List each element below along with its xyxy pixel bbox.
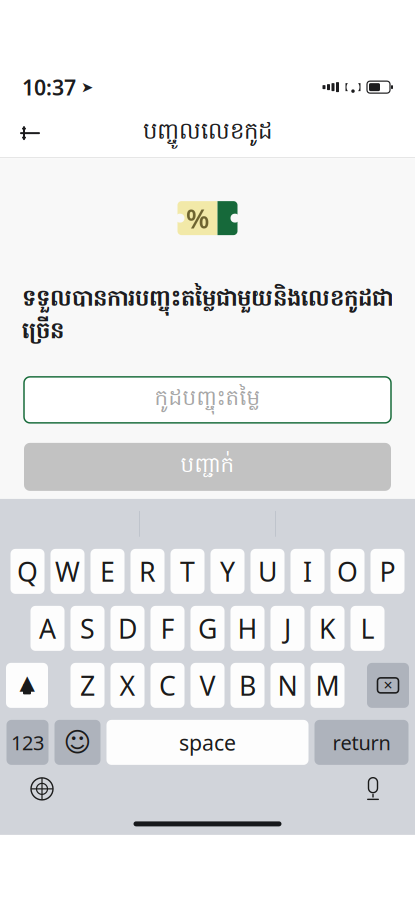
button[interactable]: H [230,606,264,651]
staticText: space [179,728,236,756]
staticText: O [337,554,358,589]
staticText: P [379,554,395,589]
staticText: J [284,611,291,646]
button[interactable]: L [350,606,384,651]
button[interactable]: Dictation [351,767,395,811]
button[interactable]: បញ្ជាក់ [0,443,415,491]
staticText: ▲ [19,671,34,694]
staticText: G [198,611,217,646]
button[interactable]: E [90,549,124,594]
button[interactable]: Z [70,663,104,708]
button[interactable]: Q [10,549,44,594]
staticText: T [180,554,195,589]
button[interactable]: Back [8,111,52,155]
staticText: ☺ [63,727,91,757]
staticText: % [186,200,209,236]
button[interactable]: M [310,663,344,708]
staticText: L [360,611,374,646]
staticText: ➤ [81,79,93,95]
staticText: 10:37 [22,73,76,101]
staticText: S [80,611,95,646]
button[interactable]: 123 [6,720,48,765]
button[interactable]: space [106,720,308,765]
staticText: E [100,554,115,589]
button[interactable]: A [30,606,64,651]
staticText: B [239,668,256,703]
button[interactable]: Y [210,549,244,594]
button[interactable]: N [270,663,304,708]
staticText: M [315,668,339,703]
button[interactable]: Delete [367,663,409,708]
staticText: W [55,554,80,589]
button[interactable]: return [314,720,408,765]
button[interactable]: G [190,606,224,651]
button[interactable]: Switch keyboard [20,767,64,811]
button[interactable]: I [290,549,324,594]
button[interactable]: K [310,606,344,651]
button[interactable]: T [170,549,204,594]
staticText: return [332,729,390,756]
staticText: បញ្ជាក់ [180,452,234,482]
staticText: បញ្ចូលលេខកូដ [143,117,272,149]
staticText: Q [17,554,38,589]
staticText: V [199,668,215,703]
staticText: H [237,611,257,646]
button[interactable]: Shift [6,663,48,708]
staticText: K [319,611,336,646]
button[interactable]: W [50,549,84,594]
button[interactable]: Emoji [54,720,100,765]
button[interactable]: V [190,663,224,708]
button[interactable]: J [270,606,304,651]
button[interactable]: O [330,549,364,594]
staticText: U [258,554,277,589]
button[interactable]: R [130,549,164,594]
button[interactable]: B [230,663,264,708]
staticText: N [277,668,297,703]
staticText: A [39,611,56,646]
button[interactable]: F [150,606,184,651]
button[interactable]: U [250,549,284,594]
button[interactable]: D [110,606,144,651]
staticText: R [139,554,156,589]
staticText: I [303,554,312,589]
button[interactable]: X [110,663,144,708]
staticText: ទទួលបានការបញ្ចុះតម្លៃជាមួយនិងលេខកូដជាច្រ… [22,284,393,349]
staticText: C [159,668,176,703]
button[interactable]: P [370,549,404,594]
staticText: កូដបញ្ចុះតម្លៃ [154,385,260,415]
staticText: Y [220,554,235,589]
staticText: X [119,668,135,703]
button[interactable]: C [150,663,184,708]
staticText: Z [80,668,95,703]
staticText: ✕ [383,679,393,692]
staticText: D [118,611,137,646]
staticText: 123 [11,729,44,756]
staticText: F [160,611,174,646]
button[interactable]: S [70,606,104,651]
